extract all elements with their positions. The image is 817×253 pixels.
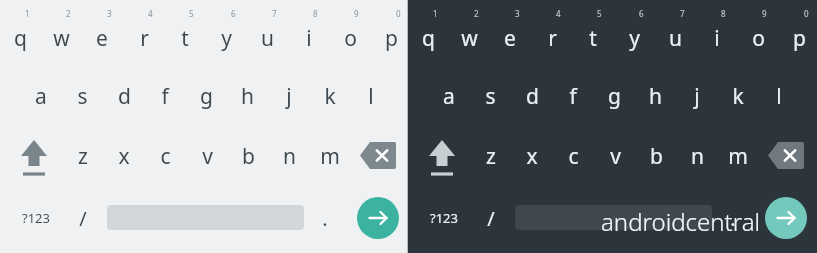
button[interactable]: w [451,18,487,58]
staticText: l [776,82,782,111]
staticText: d [118,82,131,111]
button[interactable]: Backspace [360,142,396,169]
button[interactable]: x [514,136,550,176]
staticText: u [669,24,682,53]
staticText: c [568,142,579,171]
button[interactable]: l [761,76,797,116]
button[interactable]: o [740,18,776,58]
button[interactable]: . [720,200,746,236]
staticText: s [485,82,496,111]
staticText: w [53,24,70,53]
button[interactable]: u [249,18,285,58]
staticText: r [548,24,557,53]
staticText: j [286,82,292,111]
button[interactable]: h [637,76,673,116]
button[interactable]: y [616,18,652,58]
button[interactable]: v [597,136,633,176]
button[interactable]: i [699,18,735,58]
button[interactable]: r [534,18,570,58]
button[interactable]: m [312,136,348,176]
button[interactable]: i [291,18,327,58]
staticText: w [461,24,478,53]
button[interactable]: g [596,76,632,116]
button[interactable]: n [679,136,715,176]
staticText: y [629,24,640,53]
button[interactable]: t [167,18,203,58]
button[interactable]: Shift [12,132,56,180]
button[interactable]: / [66,198,100,238]
button[interactable]: p [373,18,409,58]
button[interactable]: d [106,76,142,116]
button[interactable]: n [271,136,307,176]
staticText: f [161,82,169,111]
button[interactable]: z [473,136,509,176]
button[interactable]: e [492,18,528,58]
button[interactable]: j [679,76,715,116]
button[interactable]: o [332,18,368,58]
staticText: 0 [396,8,401,19]
button[interactable]: c [555,136,591,176]
staticText: ?123 [22,209,50,227]
button[interactable]: s [472,76,508,116]
button[interactable]: Shift [420,132,464,180]
button[interactable]: r [126,18,162,58]
button[interactable]: g [188,76,224,116]
button[interactable]: v [189,136,225,176]
button[interactable]: d [514,76,550,116]
staticText: x [526,142,538,171]
button[interactable]: ?123 [8,200,64,236]
button[interactable]: f [555,76,591,116]
button[interactable]: Backspace [768,142,804,169]
button[interactable]: c [147,136,183,176]
button[interactable]: z [65,136,101,176]
button[interactable]: f [147,76,183,116]
button[interactable]: Enter [357,197,399,239]
staticText: t [589,24,597,53]
staticText: 6 [639,8,644,19]
staticText: . [322,205,328,232]
button[interactable]: x [106,136,142,176]
button[interactable]: p [781,18,817,58]
button[interactable]: . [312,200,338,236]
button[interactable]: q [410,18,446,58]
staticText: t [181,24,189,53]
staticText: g [200,82,213,111]
button[interactable]: l [353,76,389,116]
staticText: v [202,142,213,171]
staticText: 3 [107,8,112,19]
button[interactable]: h [229,76,265,116]
staticText: 1 [25,8,30,19]
staticText: m [320,142,340,171]
button[interactable]: / [474,198,508,238]
button[interactable]: w [43,18,79,58]
button[interactable]: b [638,136,674,176]
staticText: 7 [272,8,277,19]
button[interactable]: m [720,136,756,176]
staticText: 8 [721,8,726,19]
button[interactable]: k [312,76,348,116]
button[interactable]: e [84,18,120,58]
button[interactable]: Enter [765,197,807,239]
staticText: m [728,142,748,171]
button[interactable]: Space [515,205,712,230]
staticText: 9 [762,8,767,19]
button[interactable]: k [720,76,756,116]
button[interactable]: q [2,18,38,58]
button[interactable]: ?123 [416,200,472,236]
button[interactable]: u [657,18,693,58]
button[interactable]: j [271,76,307,116]
staticText: b [650,142,663,171]
button[interactable]: a [23,76,59,116]
staticText: o [752,24,765,53]
button[interactable]: a [431,76,467,116]
button[interactable]: t [575,18,611,58]
staticText: q [422,24,435,53]
button[interactable]: y [208,18,244,58]
button[interactable]: s [64,76,100,116]
button[interactable]: b [230,136,266,176]
staticText: p [385,24,398,53]
staticText: 2 [474,8,479,19]
staticText: n [283,142,296,171]
staticText: p [793,24,806,53]
